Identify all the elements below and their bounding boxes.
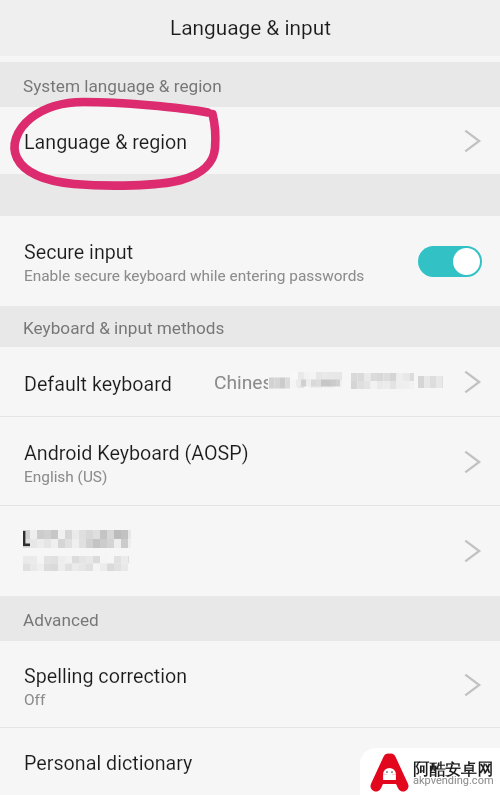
staticText: Secure input — [24, 241, 134, 264]
other: Secure input toggle — [418, 246, 482, 277]
staticText: akpvending.com — [413, 774, 494, 787]
button[interactable]: Android Keyboard (AOSP) — [0, 417, 500, 506]
staticText: Personal dictionary — [24, 752, 193, 775]
staticText: Android Keyboard (AOSP) — [24, 442, 249, 465]
staticText: Language & input — [170, 16, 331, 40]
staticText: System language & region — [23, 76, 222, 96]
staticText: Keyboard & input methods — [23, 318, 225, 338]
button[interactable] — [0, 506, 500, 596]
staticText: Enable secure keyboard while entering pa… — [24, 267, 365, 285]
button[interactable]: Language & region — [0, 107, 500, 174]
staticText: Spelling correction — [24, 665, 188, 688]
button[interactable]: Personal dictionary — [0, 728, 500, 795]
staticText: Default keyboard — [24, 373, 172, 396]
button[interactable]: Default keyboard — [0, 347, 500, 417]
button[interactable]: Secure input — [0, 216, 500, 306]
button[interactable]: Spelling correction — [0, 641, 500, 728]
staticText: 阿酷安卓网 — [413, 760, 493, 780]
staticText: Off — [24, 691, 46, 709]
staticText: Chinese — [214, 371, 283, 394]
staticText: Language & region — [24, 131, 188, 154]
staticText: English (US) — [24, 468, 108, 486]
staticText: Advanced — [23, 610, 99, 630]
